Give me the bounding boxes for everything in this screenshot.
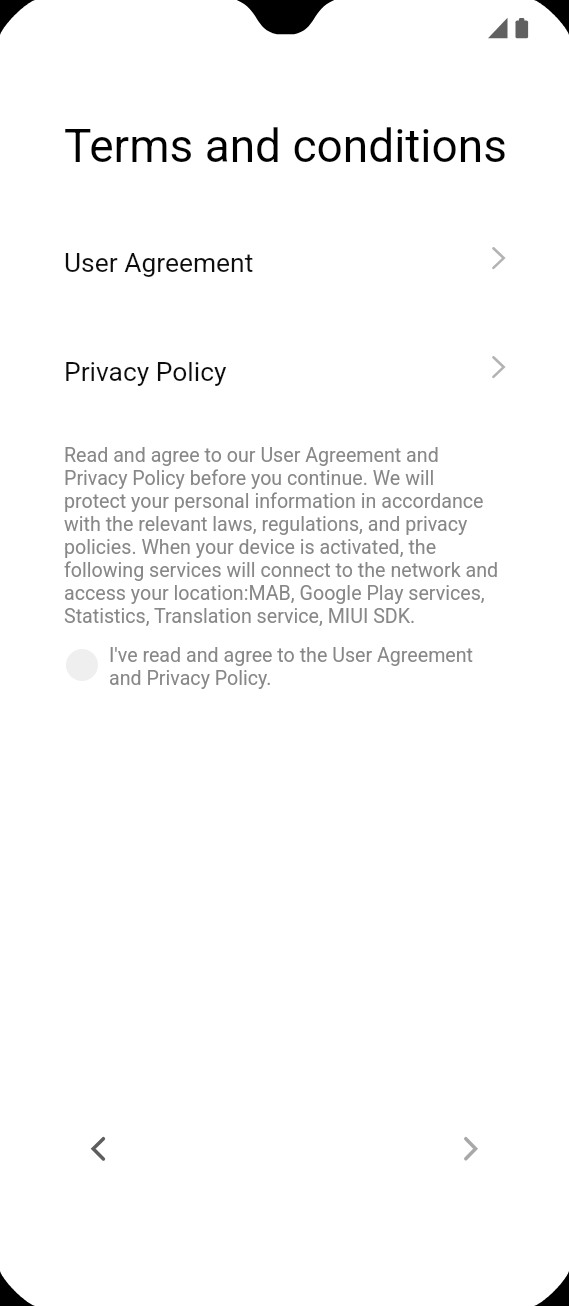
staticText: Privacy Policy bbox=[64, 357, 227, 388]
button[interactable]: Privacy Policy bbox=[0, 341, 569, 401]
button[interactable]: User Agreement bbox=[0, 232, 569, 292]
button[interactable]: Previous page bbox=[74, 1130, 112, 1168]
staticText: User Agreement bbox=[64, 248, 254, 279]
staticText: Terms and conditions bbox=[64, 119, 507, 173]
staticText: I've read and agree to the User Agreemen… bbox=[109, 644, 489, 690]
button[interactable]: Next page bbox=[448, 1130, 486, 1168]
button[interactable]: I've read and agree to the User Agreemen… bbox=[64, 644, 489, 690]
staticText: Read and agree to our User Agreement and… bbox=[64, 444, 500, 628]
